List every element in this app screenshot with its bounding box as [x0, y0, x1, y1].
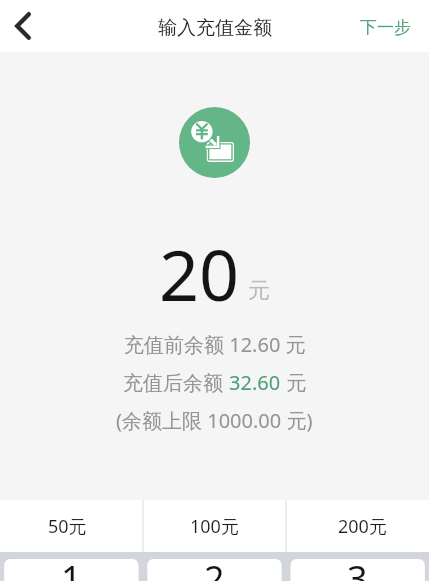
button[interactable]: 2: [143, 552, 286, 581]
button[interactable]: 100元: [143, 500, 286, 552]
staticText: 下一步: [360, 17, 411, 38]
staticText: 20: [159, 226, 240, 321]
button[interactable]: 200元: [286, 500, 429, 552]
staticText: 50元: [48, 514, 87, 539]
button[interactable]: 1: [0, 552, 143, 581]
button[interactable]: Back: [1, 0, 45, 52]
staticText: 1: [61, 554, 82, 581]
staticText: 输入充值金额: [158, 16, 272, 40]
staticText: 充值后余额: [123, 369, 229, 396]
staticText: 100元: [190, 514, 239, 539]
button[interactable]: 50元: [0, 500, 143, 552]
button[interactable]: 3: [286, 552, 429, 581]
staticText: 32.60: [229, 369, 281, 396]
staticText: 元: [248, 277, 270, 305]
staticText: 200元: [338, 514, 387, 539]
staticText: 2: [204, 554, 225, 581]
staticText: 3: [347, 554, 368, 581]
staticText: 充值前余额 12.60 元: [124, 331, 306, 358]
staticText: 元: [281, 369, 307, 396]
staticText: (余额上限 1000.00 元): [116, 407, 313, 434]
button[interactable]: 下一步: [360, 0, 411, 52]
